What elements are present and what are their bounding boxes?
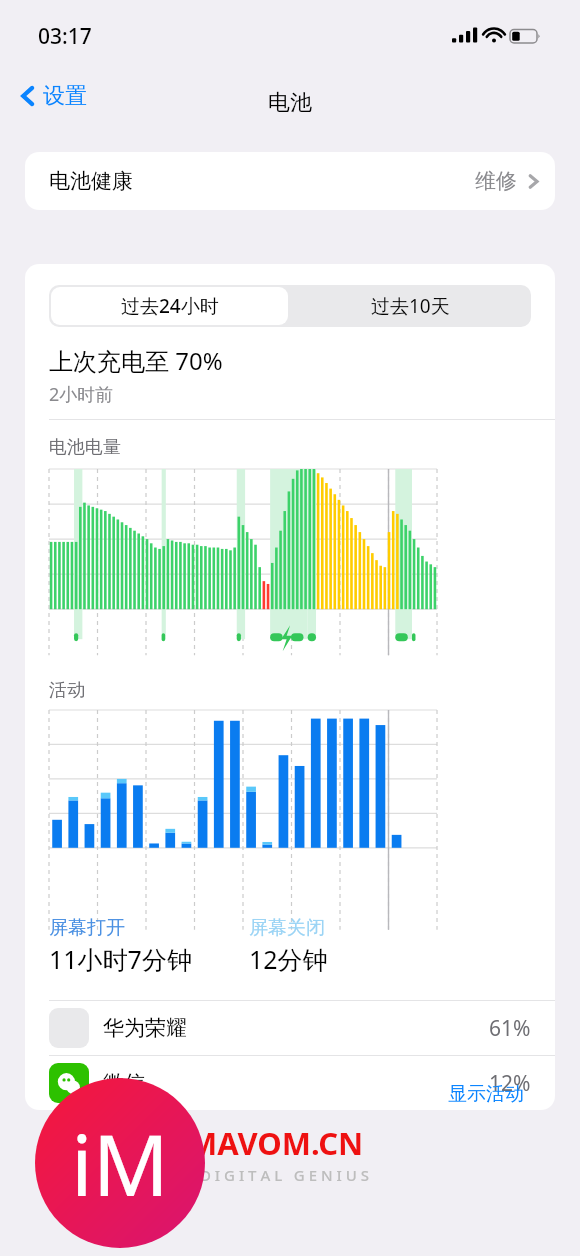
staticText: 11小时7分钟 <box>49 942 192 976</box>
button[interactable]: 电池健康 <box>25 152 555 210</box>
staticText: 12分钟 <box>249 942 328 976</box>
staticText: iM <box>71 1106 169 1220</box>
button[interactable]: 过去10天 <box>290 285 531 327</box>
staticText: 2小时前 <box>49 382 114 407</box>
staticText: 电池 <box>268 89 312 117</box>
staticText: 过去10天 <box>371 293 450 319</box>
staticText: 微信 <box>103 1070 145 1096</box>
staticText: 电池健康 <box>49 168 133 194</box>
staticText: 电池电量 <box>49 436 121 459</box>
staticText: 过去24小时 <box>121 293 219 319</box>
staticText: 03:17 <box>38 22 92 51</box>
staticText: 设置 <box>43 82 87 110</box>
button[interactable]: 华为荣耀 <box>25 1001 555 1055</box>
staticText: 61% <box>489 1014 531 1043</box>
staticText: 12% <box>489 1069 531 1098</box>
staticText: 维修 <box>475 168 517 194</box>
staticText: 上次充电至 70% <box>49 344 223 377</box>
staticText: 华为荣耀 <box>103 1015 187 1041</box>
button[interactable]: 显示活动 <box>448 1082 524 1106</box>
button[interactable]: 设置 <box>14 78 93 114</box>
staticText: 活动 <box>49 679 85 702</box>
staticText: MAVOM.CN <box>188 1122 364 1164</box>
staticText: 屏幕关闭 <box>249 916 325 940</box>
staticText: 屏幕打开 <box>49 916 125 940</box>
staticText: D I G I T A L G E N I U S <box>200 1165 369 1185</box>
button[interactable]: 过去24小时 <box>51 287 288 325</box>
button[interactable]: 微信 <box>25 1056 555 1110</box>
